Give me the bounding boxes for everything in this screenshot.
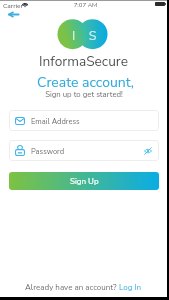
staticText: Carrier xyxy=(3,1,23,10)
staticText: S xyxy=(88,27,97,44)
button[interactable]: Log In xyxy=(119,282,142,293)
button[interactable]: Sign Up xyxy=(9,172,159,190)
staticText: I xyxy=(70,27,77,44)
button[interactable]: Back xyxy=(4,8,24,21)
staticText: Already have an account? xyxy=(25,282,119,293)
button[interactable]: Show password xyxy=(143,146,153,156)
button[interactable]: Password xyxy=(9,140,159,161)
staticText: Email Address xyxy=(31,116,80,126)
staticText: Password xyxy=(31,146,65,156)
staticText: Sign Up xyxy=(70,176,99,187)
staticText: InformaSecure xyxy=(0,52,167,71)
button[interactable]: Email Address xyxy=(9,110,159,131)
staticText: Create account, xyxy=(2,73,169,92)
staticText: 7:07 AM xyxy=(2,1,169,9)
staticText: Sign up to get started! xyxy=(0,89,168,100)
